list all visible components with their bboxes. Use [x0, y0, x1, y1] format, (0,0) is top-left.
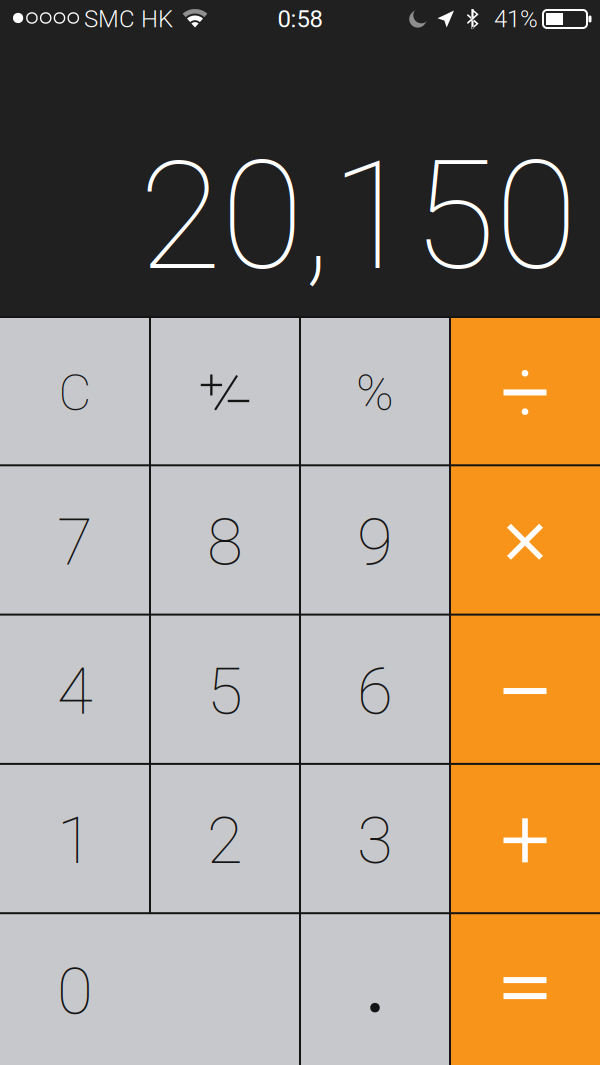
- button[interactable]: Multiply: [450, 465, 600, 615]
- staticText: C: [58, 363, 91, 423]
- button[interactable]: 1: [0, 764, 150, 913]
- button[interactable]: 8: [150, 465, 300, 615]
- button[interactable]: %: [300, 316, 450, 465]
- staticText: 20,150: [139, 128, 577, 305]
- button[interactable]: Divide: [450, 316, 600, 465]
- button[interactable]: Equals: [450, 913, 600, 1065]
- button[interactable]: 2: [150, 764, 300, 913]
- button[interactable]: Plus: [450, 764, 600, 913]
- staticText: 6: [357, 653, 393, 730]
- staticText: 4: [57, 653, 93, 730]
- staticText: 0: [57, 953, 93, 1030]
- staticText: 0:58: [277, 5, 322, 33]
- button[interactable]: 6: [300, 615, 450, 764]
- staticText: 41%: [494, 5, 538, 33]
- button[interactable]: 4: [0, 615, 150, 764]
- button[interactable]: 3: [300, 764, 450, 913]
- staticText: 2: [207, 802, 243, 879]
- staticText: 7: [57, 504, 93, 580]
- button[interactable]: 7: [0, 465, 150, 615]
- button[interactable]: Decimal point: [300, 913, 450, 1065]
- button[interactable]: Plus minus: [150, 316, 300, 465]
- button[interactable]: Minus: [450, 615, 600, 764]
- staticText: 9: [357, 504, 393, 580]
- staticText: 1: [57, 802, 93, 879]
- button[interactable]: 0: [0, 913, 300, 1065]
- staticText: 5: [207, 653, 243, 730]
- staticText: 8: [207, 504, 243, 580]
- button[interactable]: 9: [300, 465, 450, 615]
- staticText: 3: [357, 802, 393, 879]
- staticText: SMC HK: [84, 5, 173, 33]
- button[interactable]: 5: [150, 615, 300, 764]
- button[interactable]: C: [0, 316, 150, 465]
- staticText: %: [356, 363, 394, 423]
